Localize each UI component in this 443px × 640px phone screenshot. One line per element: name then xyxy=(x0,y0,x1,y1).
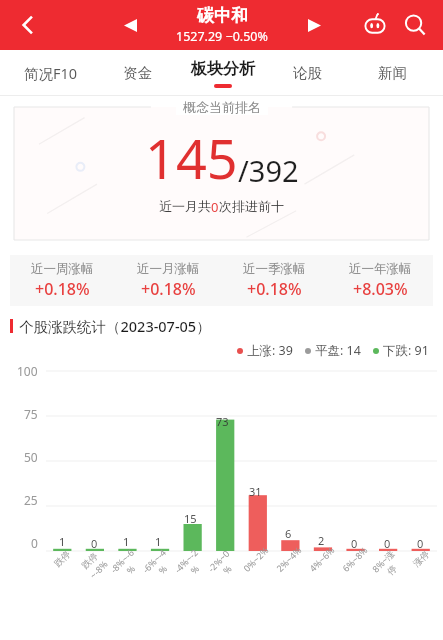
staticText: +8.03% xyxy=(353,278,408,300)
staticText: 1 xyxy=(59,534,66,549)
button[interactable]: Search xyxy=(395,5,435,45)
staticText: -6%~-4% xyxy=(138,545,178,585)
staticText: 1527.29 −0.50% xyxy=(176,28,268,45)
staticText: 近一月共 xyxy=(159,198,211,214)
staticText: 6 xyxy=(285,526,292,541)
staticText: 0 xyxy=(31,535,38,551)
staticText: 上涨: 39 xyxy=(247,342,293,359)
staticText: 2%~4% xyxy=(273,544,304,574)
button[interactable]: Robot assistant xyxy=(355,5,395,45)
staticText: 73 xyxy=(216,414,229,429)
button[interactable]: 近一季涨幅 xyxy=(221,261,327,300)
staticText: +0.18% xyxy=(141,278,196,300)
staticText: 近一月涨幅 xyxy=(137,261,200,277)
staticText: 8%~涨停 xyxy=(367,545,408,586)
staticText: /392 xyxy=(238,151,299,190)
staticText: 次排进前十 xyxy=(219,198,284,214)
staticText: 4%~6% xyxy=(306,544,337,574)
staticText: -2%~0% xyxy=(202,545,243,585)
staticText: -4%~-2% xyxy=(170,545,210,585)
staticText: 近一季涨幅 xyxy=(243,261,306,277)
staticText: 0 xyxy=(384,536,391,551)
staticText: +0.18% xyxy=(247,278,302,300)
button[interactable]: 板块分析 xyxy=(180,50,265,96)
staticText: 0 xyxy=(417,536,424,551)
staticText: 近一年涨幅 xyxy=(349,261,412,277)
staticText: 0 xyxy=(91,536,98,551)
button[interactable]: 新闻 xyxy=(350,50,435,96)
button[interactable]: 简况F10 xyxy=(8,50,94,96)
staticText: 75 xyxy=(24,406,38,422)
staticText: 0 xyxy=(351,536,358,551)
staticText: 新闻 xyxy=(378,64,407,82)
staticText: 100 xyxy=(17,363,38,379)
staticText: 0%~2% xyxy=(240,544,271,574)
staticText: 0 xyxy=(211,198,219,216)
button[interactable]: Back xyxy=(6,3,50,47)
button[interactable]: Next xyxy=(297,8,331,42)
staticText: 1 xyxy=(123,534,130,549)
staticText: 31 xyxy=(249,484,262,499)
staticText: 个股涨跌统计（2023-07-05） xyxy=(19,316,211,336)
staticText: 论股 xyxy=(293,64,322,82)
button[interactable]: Previous xyxy=(113,8,147,42)
staticText: 50 xyxy=(24,449,38,465)
staticText: 资金 xyxy=(123,64,152,82)
staticText: 板块分析 xyxy=(191,59,255,79)
button[interactable]: 近一月涨幅 xyxy=(115,261,221,300)
staticText: 碳中和 xyxy=(197,5,248,26)
staticText: -8%~-6% xyxy=(106,545,146,585)
staticText: 涨停 xyxy=(411,548,431,569)
staticText: 跌停~-8% xyxy=(74,545,114,585)
button[interactable]: 近一年涨幅 xyxy=(327,261,433,300)
button[interactable]: 资金 xyxy=(94,50,180,96)
button[interactable]: 论股 xyxy=(265,50,350,96)
staticText: 1 xyxy=(155,534,162,549)
staticText: 2 xyxy=(318,533,325,548)
staticText: 平盘: 14 xyxy=(315,342,361,359)
staticText: 跌停 xyxy=(52,548,72,569)
staticText: 15 xyxy=(184,511,197,526)
staticText: 25 xyxy=(24,492,38,508)
staticText: 6%~8% xyxy=(339,544,370,574)
staticText: 概念当前排名 xyxy=(183,99,261,115)
staticText: 145 xyxy=(145,121,238,195)
staticText: 简况F10 xyxy=(24,63,78,83)
staticText: +0.18% xyxy=(35,278,90,300)
staticText: 下跌: 91 xyxy=(383,342,429,359)
button[interactable]: 近一周涨幅 xyxy=(10,261,115,300)
staticText: 近一周涨幅 xyxy=(31,261,94,277)
